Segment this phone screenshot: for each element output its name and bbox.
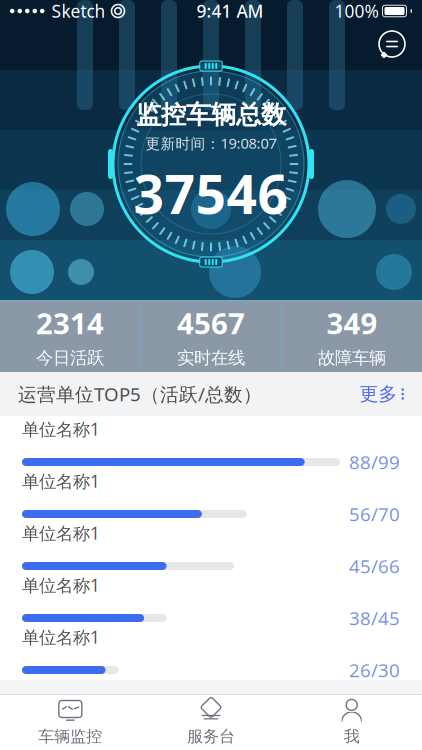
button[interactable]: 服务台 <box>141 695 281 750</box>
button[interactable]: 单位名称1 <box>0 628 422 680</box>
staticText: 单位名称1 <box>22 574 100 597</box>
staticText: 56/70 <box>349 502 400 526</box>
button[interactable]: 单位名称1 <box>0 472 422 524</box>
staticText: 26/30 <box>349 658 400 682</box>
staticText: 我 <box>344 727 360 746</box>
staticText: 88/99 <box>349 450 400 474</box>
button[interactable]: 我 <box>281 695 422 750</box>
staticText: 服务台 <box>187 727 235 746</box>
button[interactable]: 单位名称1 <box>0 576 422 628</box>
staticText: 9:41 AM <box>196 0 263 22</box>
button[interactable]: 4567 <box>141 303 281 369</box>
button[interactable]: 349 <box>282 303 422 369</box>
staticText: 38/45 <box>349 606 400 630</box>
staticText: 车辆监控 <box>38 727 102 746</box>
staticText: 2314 <box>36 303 104 342</box>
staticText: 45/66 <box>349 554 400 578</box>
button[interactable]: 2314 <box>0 303 140 369</box>
staticText: 实时在线 <box>177 347 245 369</box>
staticText: 今日活跃 <box>36 347 104 369</box>
staticText: 更新时间：19:08:07 <box>145 133 276 153</box>
button[interactable]: 消息 <box>372 24 412 64</box>
staticText: 37546 <box>133 158 288 229</box>
staticText: 单位名称1 <box>22 470 100 493</box>
staticText: 单位名称1 <box>22 626 100 649</box>
staticText: 故障车辆 <box>318 347 386 369</box>
button[interactable]: 更多 <box>359 382 404 405</box>
staticText: 更多 <box>359 382 397 405</box>
staticText: 349 <box>326 303 377 342</box>
staticText: 4567 <box>177 303 245 342</box>
staticText: 100% <box>334 0 378 22</box>
button[interactable]: 单位名称1 <box>0 420 422 472</box>
staticText: 运营单位TOP5（活跃/总数） <box>18 382 262 406</box>
staticText: 单位名称1 <box>22 522 100 545</box>
staticText: Sketch <box>51 0 105 22</box>
button[interactable]: 单位名称1 <box>0 524 422 576</box>
staticText: 单位名称1 <box>22 418 100 441</box>
staticText: 监控车辆总数 <box>136 99 286 130</box>
button[interactable]: 车辆监控 <box>0 695 141 750</box>
